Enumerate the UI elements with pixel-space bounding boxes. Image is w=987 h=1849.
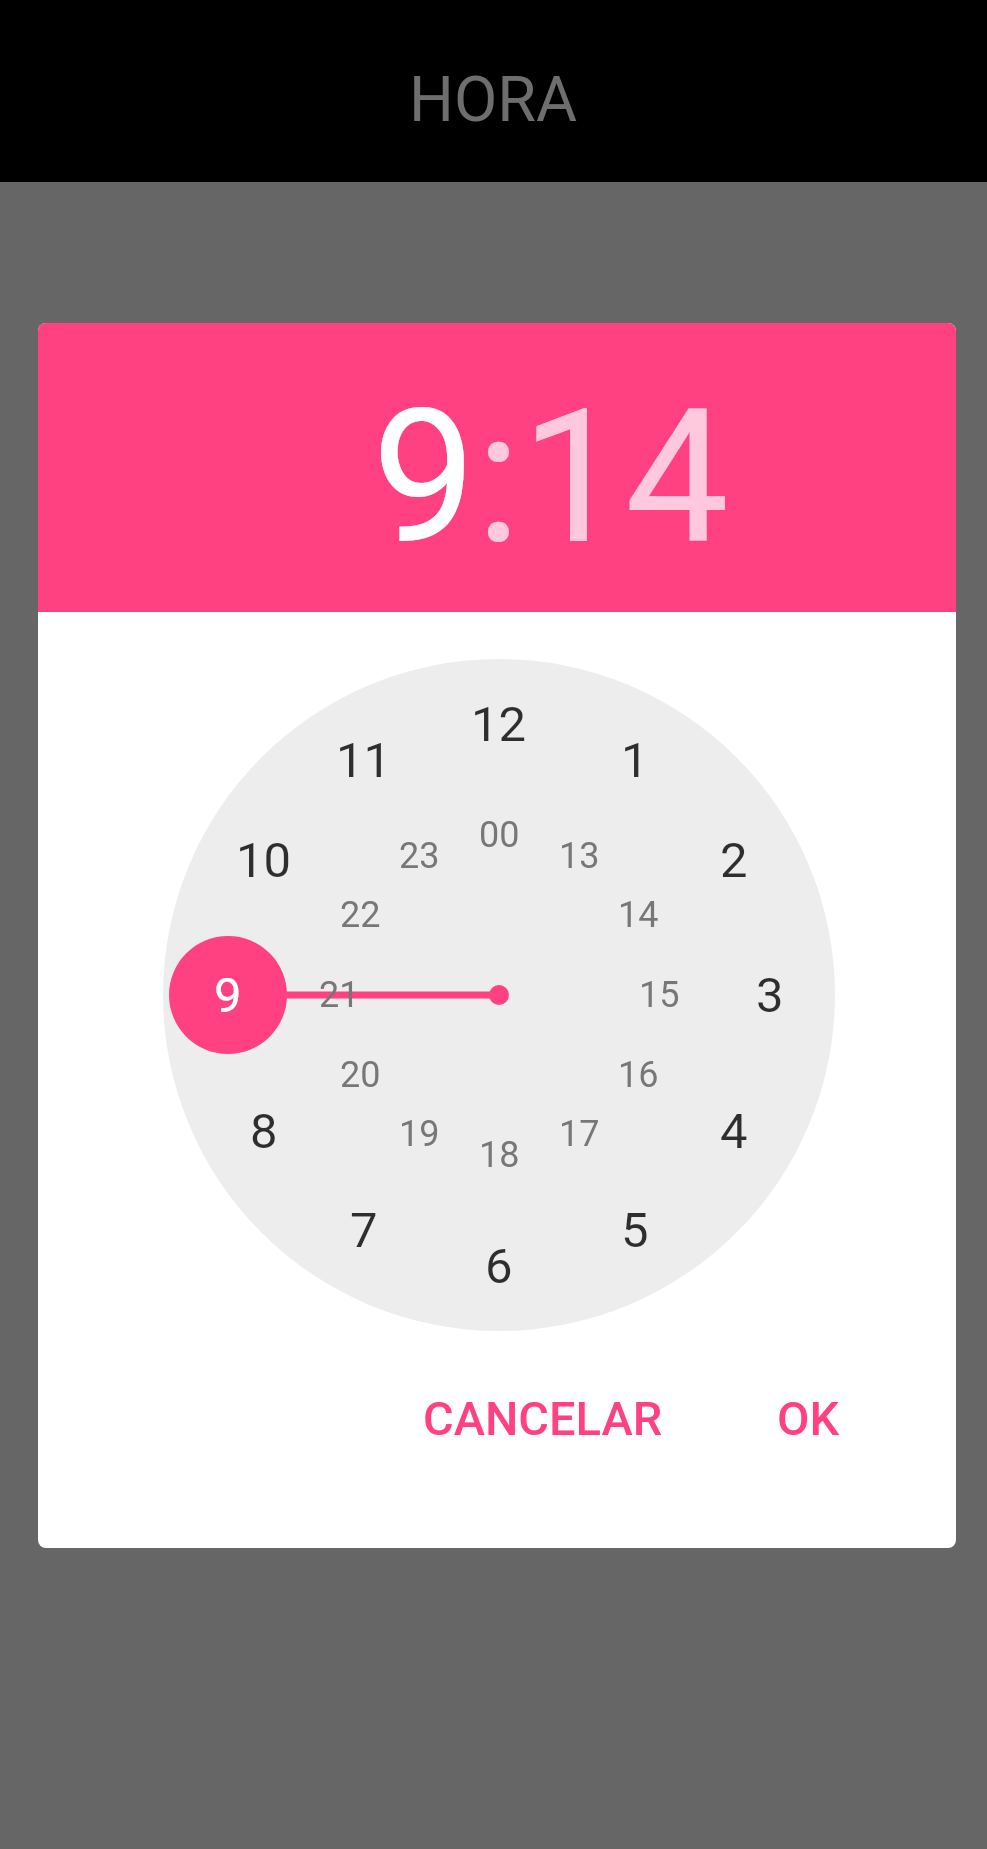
staticText: 3: [756, 967, 784, 1024]
staticText: 18: [479, 1134, 520, 1176]
staticText: 2: [720, 832, 748, 889]
staticText: 12: [471, 696, 527, 753]
staticText: 11: [336, 732, 392, 789]
staticText: 9: [214, 967, 242, 1024]
staticText: 21: [319, 974, 360, 1016]
staticText: 9: [372, 369, 476, 586]
staticText: 17: [559, 1113, 600, 1155]
staticText: 10: [236, 832, 292, 889]
staticText: CANCELAR: [423, 1391, 663, 1446]
staticText: 14: [618, 894, 659, 936]
staticText: 1: [621, 732, 649, 789]
button[interactable]: OK: [728, 1358, 888, 1478]
staticText: 8: [250, 1103, 278, 1160]
staticText: 13: [559, 835, 600, 877]
staticText: 19: [399, 1113, 440, 1155]
staticText: 4: [720, 1103, 748, 1160]
staticText: :: [476, 369, 521, 586]
staticText: HORA: [409, 63, 578, 137]
staticText: 16: [618, 1054, 659, 1096]
staticText: 22: [340, 894, 381, 936]
staticText: 20: [340, 1054, 381, 1096]
staticText: 00: [479, 814, 520, 856]
staticText: 7: [350, 1202, 378, 1259]
staticText: 6: [485, 1238, 513, 1295]
staticText: 14: [521, 369, 729, 586]
staticText: 15: [639, 974, 680, 1016]
staticText: OK: [777, 1391, 840, 1446]
staticText: 23: [399, 835, 440, 877]
staticText: 5: [621, 1202, 649, 1259]
button[interactable]: CANCELAR: [403, 1358, 683, 1478]
